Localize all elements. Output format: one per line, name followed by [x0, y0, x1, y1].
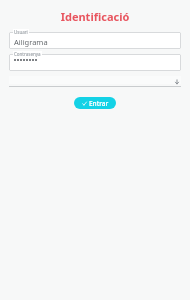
- button[interactable]: Desplega la llista: [172, 77, 181, 86]
- button[interactable]: Contrasenya: [9, 54, 181, 71]
- staticText: Entrar: [89, 99, 109, 108]
- staticText: Ailigrama: [14, 37, 48, 47]
- staticText: Identificació: [0, 9, 190, 24]
- button[interactable]: Usuari: [9, 32, 181, 49]
- button[interactable]: Entrar: [74, 97, 116, 109]
- button[interactable]: Desplega la llista: [9, 76, 181, 87]
- staticText: Usuari: [14, 29, 28, 35]
- staticText: Contrasenya: [14, 51, 41, 57]
